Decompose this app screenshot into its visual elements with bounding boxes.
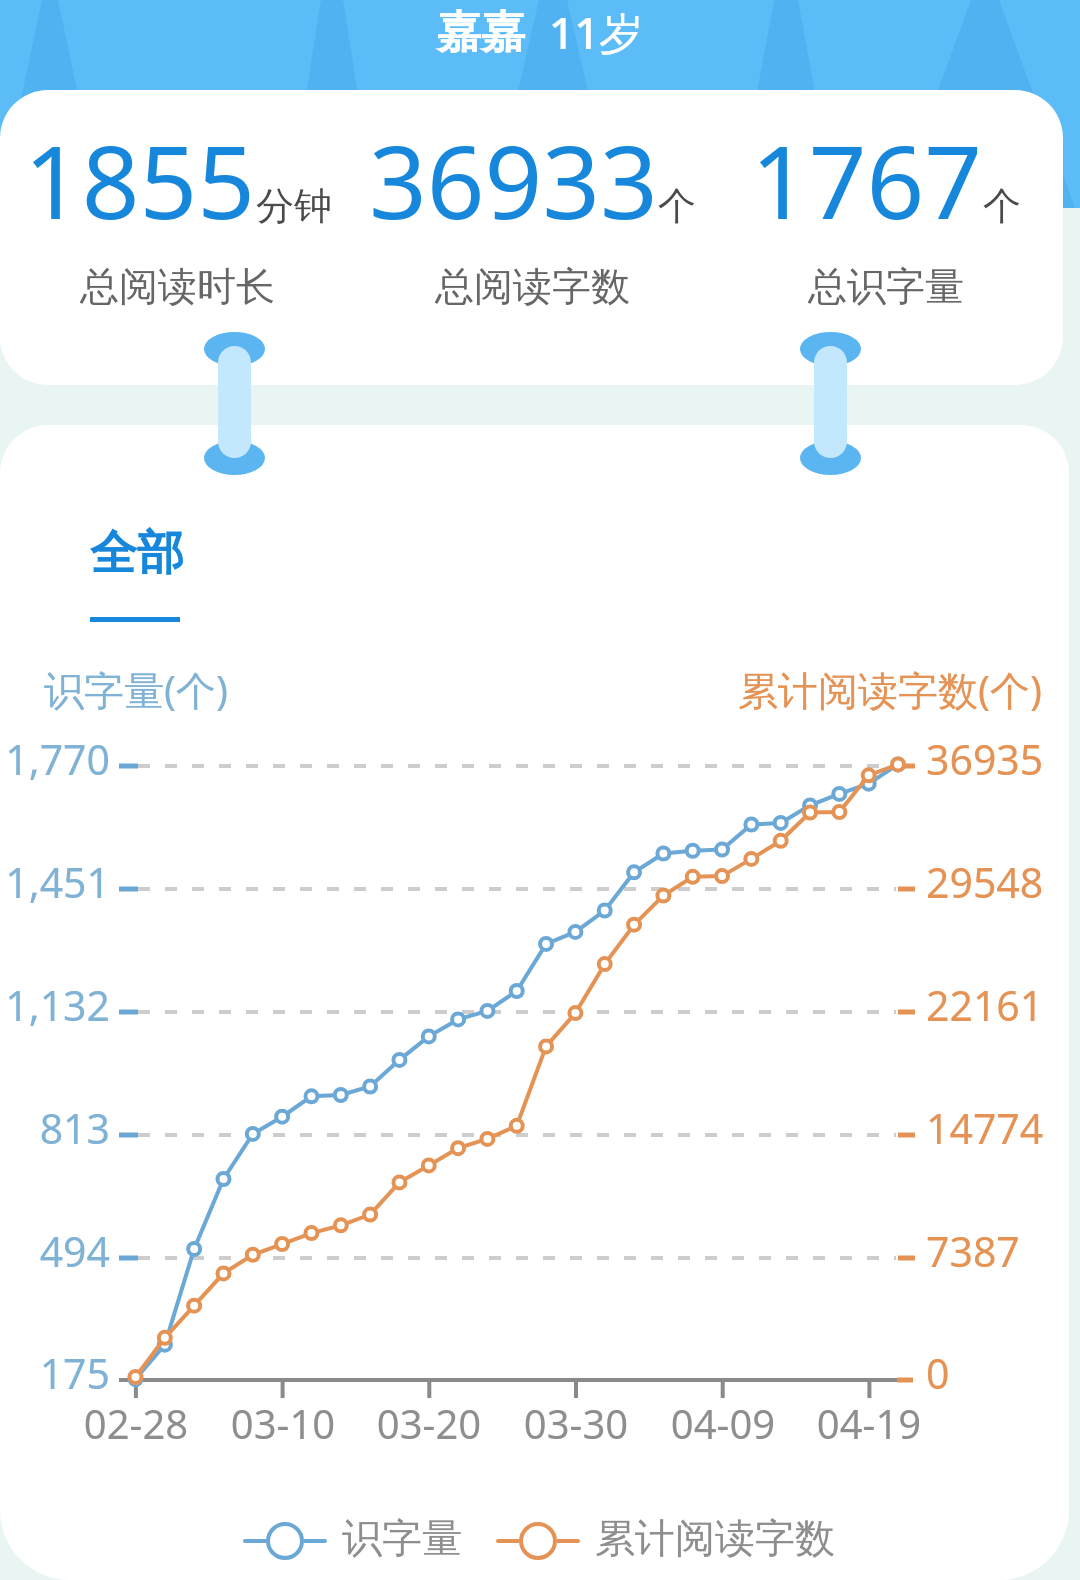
staticText: 29548 bbox=[926, 854, 1044, 910]
button[interactable]: 累计阅读字数 bbox=[498, 1516, 835, 1566]
button[interactable]: 识字量 bbox=[245, 1516, 462, 1566]
staticText: 36933 bbox=[369, 111, 658, 249]
staticText: 11岁 bbox=[549, 2, 644, 62]
staticText: 175 bbox=[0, 1345, 110, 1401]
staticText: 嘉嘉 bbox=[437, 5, 525, 60]
staticText: 总阅读字数 bbox=[435, 262, 630, 311]
staticText: 14774 bbox=[926, 1100, 1044, 1156]
button[interactable]: 1767 bbox=[709, 90, 1063, 311]
staticText: 1767 bbox=[751, 111, 983, 249]
staticText: 1,770 bbox=[0, 731, 110, 787]
staticText: 识字量(个) bbox=[44, 662, 228, 717]
staticText: 03-20 bbox=[354, 1396, 504, 1450]
staticText: 个 bbox=[658, 182, 696, 230]
staticText: 22161 bbox=[926, 977, 1044, 1033]
staticText: 总阅读时长 bbox=[80, 262, 275, 311]
staticText: 全部 bbox=[90, 524, 184, 583]
staticText: 36935 bbox=[926, 731, 1044, 787]
staticText: 识字量 bbox=[342, 1513, 462, 1563]
staticText: 813 bbox=[0, 1100, 110, 1156]
staticText: 04-19 bbox=[794, 1396, 944, 1450]
staticText: 0 bbox=[926, 1345, 950, 1401]
staticText: 分钟 bbox=[256, 182, 332, 230]
staticText: 总识字量 bbox=[808, 262, 964, 311]
staticText: 7387 bbox=[926, 1223, 1020, 1279]
button[interactable]: 36933 bbox=[355, 90, 709, 311]
staticText: 1,132 bbox=[0, 977, 110, 1033]
staticText: 03-10 bbox=[208, 1396, 358, 1450]
staticText: 个 bbox=[983, 182, 1021, 230]
staticText: 03-30 bbox=[501, 1396, 651, 1450]
button[interactable]: 1855 bbox=[0, 90, 355, 311]
staticText: 累计阅读字数(个) bbox=[738, 662, 1042, 717]
staticText: 累计阅读字数 bbox=[595, 1513, 835, 1563]
button[interactable]: 全部 bbox=[90, 524, 184, 622]
staticText: 494 bbox=[0, 1223, 110, 1279]
staticText: 02-28 bbox=[61, 1396, 211, 1450]
staticText: 1,451 bbox=[0, 854, 110, 910]
staticText: 1855 bbox=[24, 111, 256, 249]
staticText: 04-09 bbox=[648, 1396, 798, 1450]
